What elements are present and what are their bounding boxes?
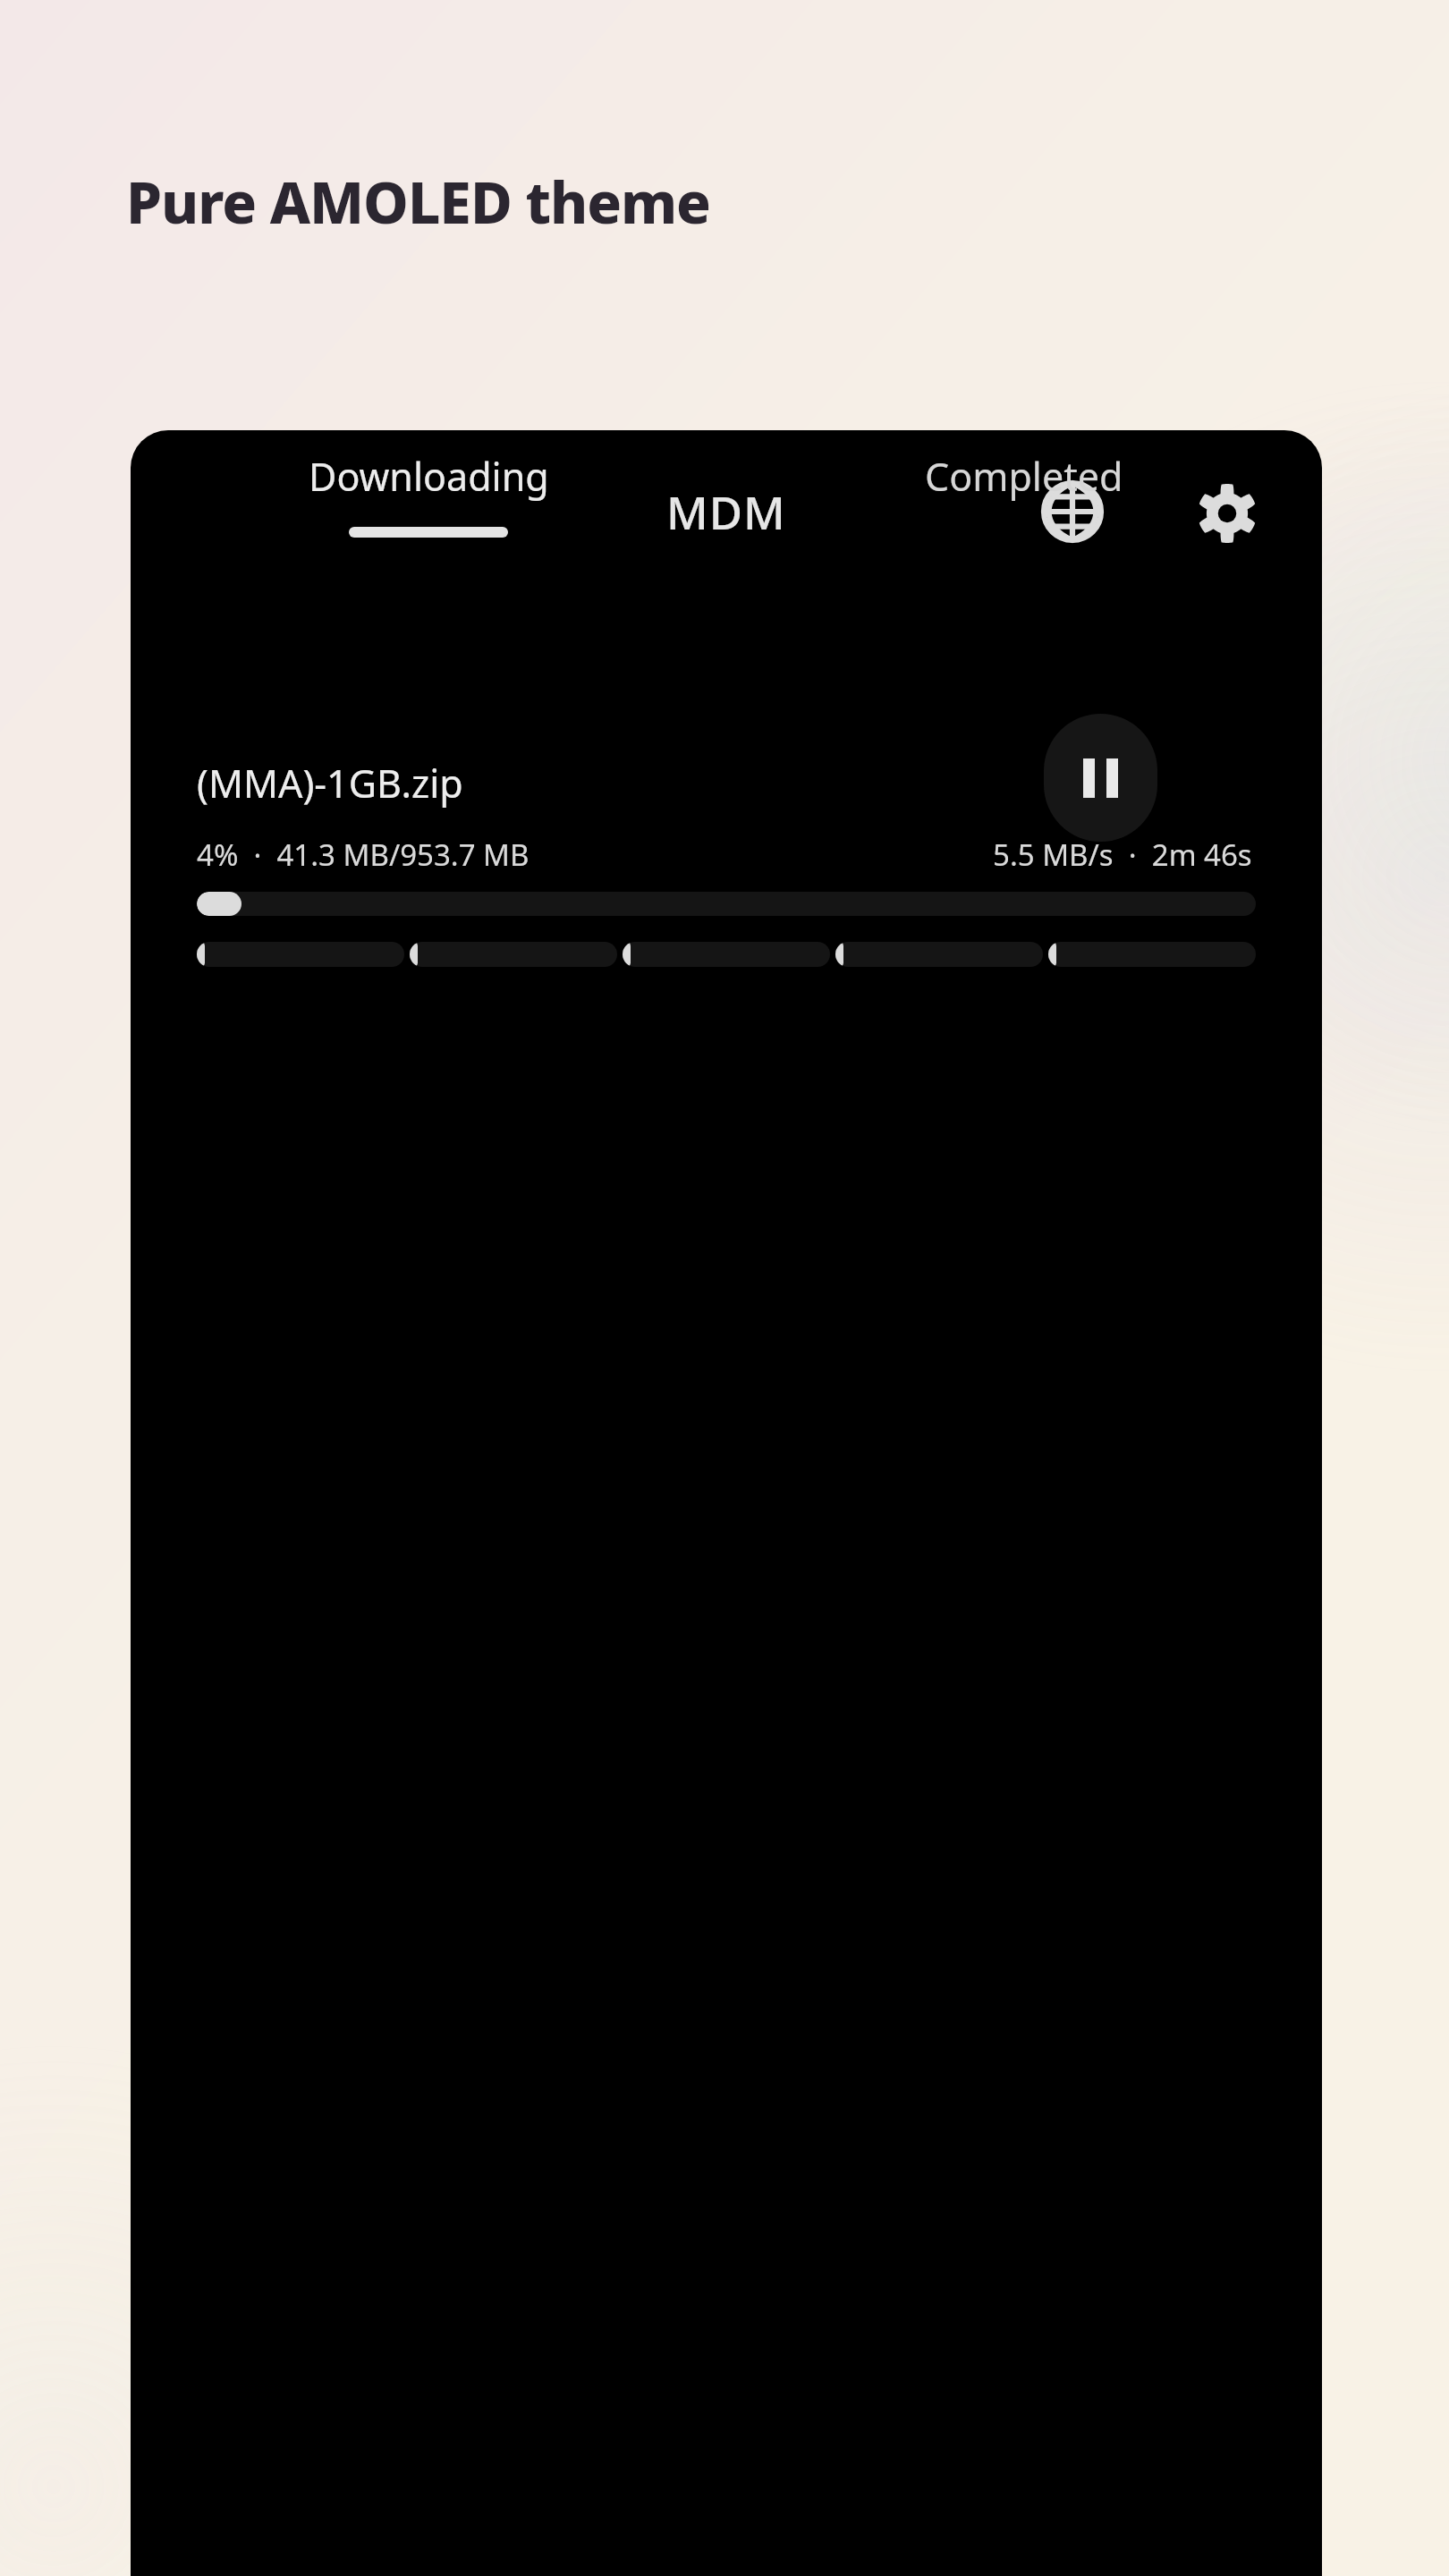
button[interactable]: Settings — [1184, 470, 1270, 556]
staticText: (MMA)-1GB.zip — [197, 757, 463, 809]
button[interactable]: Completed — [726, 430, 1322, 564]
button[interactable]: Pause — [1044, 714, 1157, 842]
staticText: MDM — [666, 480, 786, 542]
staticText: Completed — [925, 450, 1123, 503]
staticText: 5.5 MB/s · 2m 46s — [993, 835, 1252, 875]
button[interactable]: Downloading — [131, 430, 726, 564]
staticText: Downloading — [309, 450, 549, 503]
staticText: Pure AMOLED theme — [126, 163, 710, 241]
button[interactable]: Language — [1030, 469, 1115, 555]
staticText: 4% · 41.3 MB/953.7 MB — [197, 835, 530, 875]
